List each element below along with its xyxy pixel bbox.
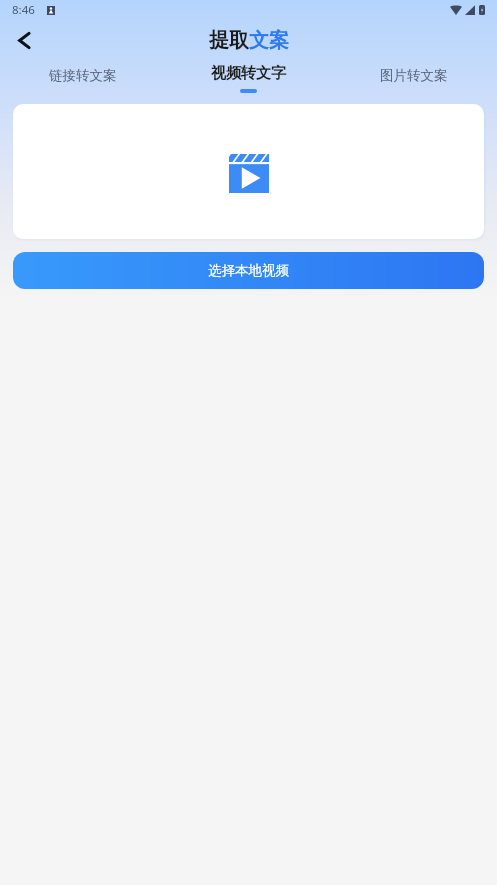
staticText: 视频转文字 — [211, 64, 286, 83]
staticText: 图片转文案 — [380, 67, 448, 84]
staticText: 提取文案 — [209, 28, 289, 53]
button[interactable] — [13, 104, 484, 239]
staticText: 链接转文案 — [49, 67, 117, 84]
staticText: 选择本地视频 — [208, 262, 289, 279]
button[interactable]: 视频转文字 — [165, 64, 331, 93]
button[interactable]: Back — [6, 23, 42, 59]
button[interactable]: 图片转文案 — [331, 67, 497, 90]
button[interactable]: 选择本地视频 — [13, 252, 484, 289]
staticText: 8:46 — [12, 2, 35, 18]
button[interactable]: 链接转文案 — [0, 67, 165, 90]
